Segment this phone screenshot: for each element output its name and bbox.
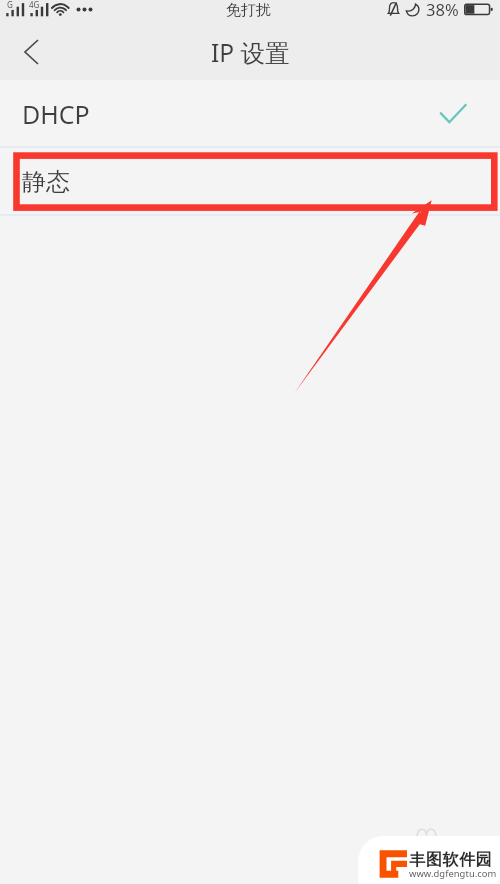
staticText: IP 设置 <box>211 36 290 69</box>
staticText: 4G <box>29 0 40 10</box>
button[interactable]: DHCP <box>0 80 500 146</box>
button[interactable]: Back <box>0 24 56 80</box>
staticText: 丰图软件园 <box>409 850 492 870</box>
staticText: G <box>7 0 13 10</box>
staticText: DHCP <box>22 97 90 131</box>
staticText: 免打扰 <box>226 1 271 20</box>
staticText: 静态 <box>22 167 70 197</box>
button[interactable]: 静态 <box>0 148 500 214</box>
staticText: www.dgfengtu.com <box>409 867 497 880</box>
staticText: 38% <box>426 0 459 20</box>
